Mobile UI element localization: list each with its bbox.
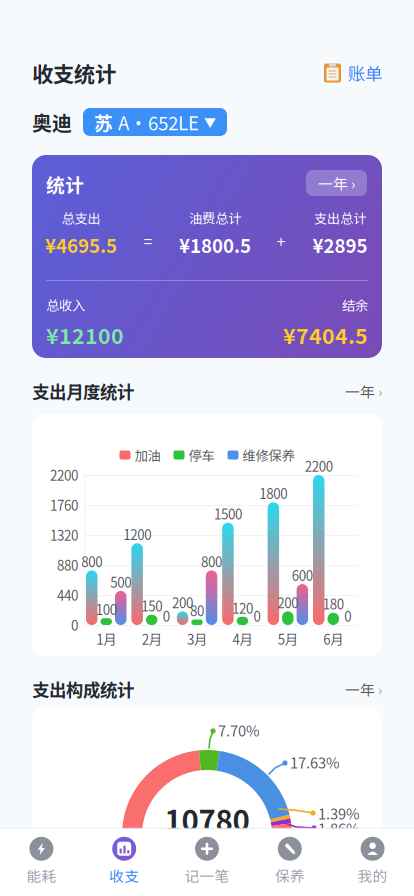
staticText: 2200	[50, 465, 78, 485]
staticText: 600	[292, 565, 313, 585]
staticText: 180	[323, 594, 344, 613]
staticText: ¥1800.5	[179, 231, 251, 258]
button[interactable]: 账单	[324, 60, 382, 86]
button[interactable]: 记一笔	[166, 837, 248, 886]
staticText: 账单	[348, 60, 382, 86]
button[interactable]: 保养	[248, 837, 331, 886]
staticText: +	[276, 229, 285, 253]
staticText: 记一笔	[184, 865, 229, 886]
button[interactable]: 一年	[345, 380, 382, 402]
staticText: 收支	[109, 865, 139, 886]
staticText: 加油	[134, 445, 160, 465]
staticText: ▼	[204, 113, 216, 131]
staticText: 1200	[123, 524, 151, 544]
staticText: 1.86%	[318, 817, 360, 839]
button[interactable]: 我的	[331, 837, 414, 886]
staticText: 120	[232, 598, 253, 617]
staticText: 停车	[188, 445, 214, 465]
staticText: 我的	[358, 865, 388, 886]
staticText: 0	[71, 615, 78, 635]
staticText: ›	[378, 380, 382, 402]
staticText: 支出构成统计	[32, 676, 134, 702]
staticText: ¥7404.5	[283, 319, 368, 350]
staticText: 7.70%	[218, 719, 260, 741]
staticText: 能耗	[26, 865, 56, 886]
staticText: 80	[190, 601, 204, 620]
staticText: 1月	[96, 629, 116, 649]
staticText: 800	[81, 552, 102, 571]
staticText: 10780	[164, 798, 249, 840]
staticText: 维修保养	[242, 445, 294, 465]
staticText: 0	[163, 606, 170, 626]
staticText: 1320	[50, 525, 78, 545]
staticText: 200	[172, 593, 193, 612]
staticText: 1800	[259, 484, 287, 503]
staticText: 1760	[50, 495, 78, 515]
staticText: 总支出	[61, 208, 100, 227]
button[interactable]: 苏	[83, 108, 227, 136]
staticText: 支出总计	[314, 208, 366, 227]
staticText: ¥12100	[46, 319, 124, 350]
staticText: 880	[57, 555, 78, 575]
staticText: 一年	[345, 380, 375, 402]
staticText: ¥2895	[312, 231, 367, 258]
staticText: =	[143, 229, 152, 253]
staticText: 1500	[214, 504, 242, 523]
staticText: 5月	[278, 629, 298, 649]
staticText: 200	[277, 593, 298, 612]
staticText: 4月	[232, 629, 252, 649]
staticText: A·652LE	[118, 108, 199, 135]
staticText: 0	[253, 606, 260, 626]
staticText: ¥4695.5	[45, 231, 117, 258]
staticText: 0	[344, 606, 351, 626]
staticText: 一年	[345, 678, 375, 700]
staticText: 统计	[46, 170, 84, 197]
staticText: 结余	[342, 295, 368, 314]
staticText: 800	[201, 552, 222, 571]
staticText: 1.39%	[318, 802, 360, 824]
staticText: 奥迪	[32, 107, 72, 136]
button[interactable]: 一年	[306, 170, 367, 196]
staticText: 一年	[318, 172, 348, 194]
staticText: 油费总计	[189, 208, 241, 227]
button[interactable]: 收支	[83, 837, 166, 886]
staticText: 支出月度统计	[32, 378, 134, 404]
staticText: ›	[378, 678, 382, 700]
button[interactable]: 能耗	[0, 837, 83, 886]
staticText: 保养	[275, 865, 305, 886]
staticText: 100	[96, 599, 117, 619]
staticText: 150	[141, 596, 162, 615]
staticText: 2200	[305, 456, 333, 476]
staticText: 17.63%	[290, 751, 340, 773]
staticText: 3月	[187, 629, 207, 649]
staticText: 2月	[142, 629, 162, 649]
staticText: 500	[110, 572, 131, 592]
staticText: 苏	[94, 108, 113, 135]
staticText: ›	[351, 172, 355, 194]
staticText: 6月	[323, 629, 343, 649]
staticText: 440	[57, 585, 78, 605]
staticText: 总收入	[46, 295, 85, 314]
button[interactable]: 一年	[345, 678, 382, 700]
staticText: 收支统计	[32, 58, 116, 88]
